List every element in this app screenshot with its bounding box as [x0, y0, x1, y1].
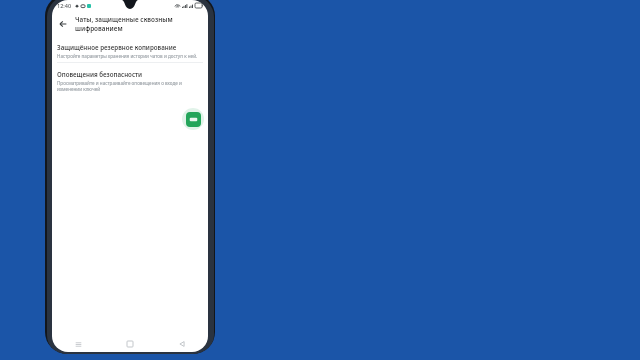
staticText: Настройте параметры хранения истории чат…	[57, 53, 198, 59]
button[interactable]: Защищённое резервное копирование	[52, 40, 208, 62]
button[interactable]: Новый чат	[186, 112, 201, 127]
staticText: Чаты, защищенные сквозным шифрованием	[75, 15, 202, 33]
button[interactable]: Недавние приложения	[52, 341, 104, 348]
staticText: 12:40	[57, 2, 72, 9]
button[interactable]: Главный экран	[104, 341, 156, 347]
button[interactable]: Оповещения безопасности	[52, 67, 208, 95]
staticText: Просматривайте и настраивайте оповещения…	[57, 80, 200, 92]
staticText: Защищённое резервное копирование	[57, 43, 177, 51]
staticText: Оповещения безопасности	[57, 70, 143, 78]
button[interactable]: Назад	[156, 341, 208, 347]
button[interactable]: Назад	[55, 16, 71, 32]
